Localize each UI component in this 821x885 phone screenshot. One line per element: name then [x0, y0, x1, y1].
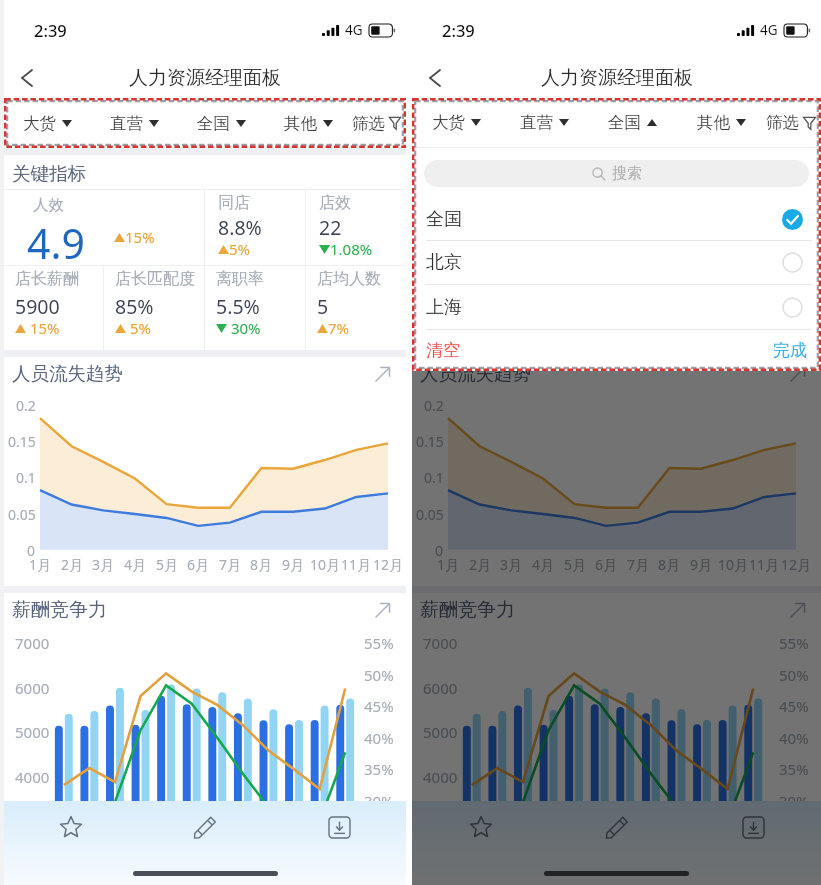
button[interactable]: 搜索: [424, 160, 809, 187]
staticText: 其他: [284, 113, 317, 134]
staticText: 同店: [218, 193, 250, 213]
staticText: 3月: [92, 555, 115, 574]
button[interactable]: 大货: [412, 98, 500, 147]
staticText: 0.1: [16, 468, 36, 487]
staticText: 30%: [227, 318, 261, 338]
staticText: 5000: [15, 722, 50, 742]
staticText: 筛选: [766, 112, 799, 133]
button[interactable]: 全国: [412, 198, 821, 240]
button[interactable]: 大货: [412, 98, 500, 148]
staticText: 关键指标: [12, 162, 86, 185]
staticText: 35%: [779, 759, 809, 779]
staticText: 人效: [33, 195, 64, 215]
button[interactable]: Edit: [138, 801, 272, 853]
staticText: 全国: [197, 113, 230, 134]
staticText: 4000: [15, 767, 50, 787]
staticText: 1月: [29, 555, 52, 574]
staticText: 35%: [364, 759, 394, 779]
staticText: 0.1: [424, 468, 444, 487]
button[interactable]: 全国: [588, 98, 677, 148]
button[interactable]: Edit: [549, 801, 685, 853]
staticText: 45%: [364, 696, 394, 716]
staticText: 直营: [110, 113, 143, 134]
staticText: 0.05: [416, 505, 444, 524]
button[interactable]: Back: [8, 59, 46, 97]
staticText: 4G: [760, 21, 778, 39]
button[interactable]: 筛选: [766, 98, 816, 147]
staticText: 3月: [500, 555, 523, 574]
staticText: 2月: [61, 555, 84, 574]
staticText: 9月: [690, 555, 713, 574]
staticText: 搜索: [612, 164, 642, 183]
staticText: 5.5%: [216, 293, 260, 320]
staticText: 5900: [15, 293, 60, 320]
staticText: 55%: [364, 633, 394, 653]
staticText: 0.2: [16, 396, 36, 415]
staticText: 筛选: [766, 113, 799, 134]
button[interactable]: 筛选: [766, 98, 816, 148]
staticText: 7%: [328, 318, 350, 338]
button[interactable]: Download: [272, 801, 406, 853]
staticText: 大货: [432, 112, 465, 133]
staticText: 10月: [718, 555, 749, 574]
staticText: 店长匹配度: [525, 269, 605, 289]
staticText: 全国: [426, 208, 462, 231]
staticText: 5%: [126, 318, 151, 338]
staticText: 1.08%: [330, 239, 373, 259]
button[interactable]: 清空: [426, 340, 460, 361]
button[interactable]: Open detail: [368, 360, 396, 388]
staticText: 4.9: [27, 215, 85, 271]
button[interactable]: 完成: [773, 340, 807, 361]
staticText: 8.8%: [629, 214, 673, 241]
staticText: 10月: [310, 555, 341, 574]
staticText: 15%: [533, 227, 563, 247]
staticText: 50%: [364, 665, 394, 685]
staticText: 4000: [423, 767, 458, 787]
staticText: 11月: [749, 555, 780, 574]
staticText: 7月: [627, 555, 650, 574]
staticText: 0.15: [8, 432, 36, 451]
staticText: 7%: [741, 318, 763, 338]
button[interactable]: 北京: [412, 241, 821, 284]
staticText: 5%: [536, 318, 561, 338]
button[interactable]: 其他: [265, 98, 352, 148]
button[interactable]: Favorite: [4, 801, 138, 853]
staticText: 店均人数: [730, 269, 794, 289]
button[interactable]: 直营: [500, 98, 588, 147]
staticText: 4月: [124, 555, 147, 574]
button[interactable]: 全国: [178, 98, 265, 148]
staticText: 30%: [364, 791, 394, 811]
button[interactable]: Favorite: [412, 801, 549, 853]
staticText: 15%: [125, 227, 155, 247]
button[interactable]: Open detail: [783, 596, 811, 624]
staticText: 11月: [341, 555, 372, 574]
staticText: 5月: [156, 555, 179, 574]
staticText: 0.2: [424, 396, 444, 415]
staticText: 全国: [608, 112, 641, 133]
staticText: 离职率: [216, 269, 264, 289]
button[interactable]: Back: [416, 59, 454, 97]
button[interactable]: 大货: [4, 98, 91, 148]
button[interactable]: Open detail: [783, 360, 811, 388]
staticText: 5%: [640, 239, 662, 259]
button[interactable]: 直营: [91, 98, 178, 148]
button[interactable]: Open detail: [368, 596, 396, 624]
button[interactable]: 其他: [677, 98, 766, 147]
button[interactable]: 其他: [677, 98, 766, 148]
staticText: 薪酬竞争力: [12, 598, 107, 622]
staticText: 离职率: [627, 269, 675, 289]
staticText: 12月: [373, 555, 404, 574]
staticText: 店均人数: [317, 269, 381, 289]
staticText: 40%: [779, 728, 809, 748]
staticText: 筛选: [352, 113, 385, 134]
button[interactable]: 筛选: [352, 98, 401, 148]
button[interactable]: Download: [685, 801, 821, 853]
button[interactable]: 全国: [588, 98, 677, 147]
staticText: 15%: [26, 318, 60, 338]
button[interactable]: 上海: [412, 285, 821, 329]
staticText: 大货: [23, 113, 56, 134]
staticText: 6000: [423, 678, 458, 698]
button[interactable]: 直营: [500, 98, 588, 148]
staticText: 45%: [779, 696, 809, 716]
